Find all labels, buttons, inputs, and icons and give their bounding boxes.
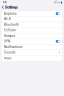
staticText: Wi-Fi [4,17,11,21]
staticText: ııl ᯤ ▮ [54,0,62,4]
staticText: VPN [4,39,10,43]
button[interactable]: Bluetooth [2,22,62,28]
button[interactable]: Cellular [2,28,62,33]
button[interactable]: Focus [2,55,62,61]
staticText: Sounds [4,51,15,54]
staticText: Bluetooth [4,23,19,27]
button[interactable]: Wi-Fi [2,17,62,22]
staticText: Settings [5,5,18,9]
button[interactable]: Sounds [2,50,62,55]
staticText: Notifications [4,45,22,49]
staticText: Cellular [4,28,16,32]
button[interactable]: Notifications [2,44,62,50]
staticText: Airplane [4,12,17,15]
button[interactable]: VPN [2,39,62,44]
staticText: 9:41 [3,0,7,4]
staticText: Focus [4,56,11,60]
button[interactable]: Hotspot [2,33,62,39]
button[interactable]: Back [0,4,5,10]
button[interactable]: Airplane [2,11,62,16]
staticText: Hotspot [4,34,15,38]
